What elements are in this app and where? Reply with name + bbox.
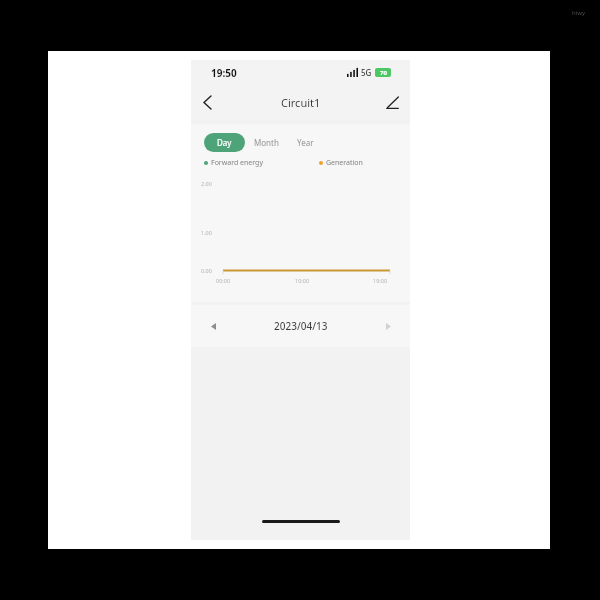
staticText: 0.00 <box>201 267 212 274</box>
staticText: 2023/04/13 <box>274 319 328 333</box>
staticText: 2.00 <box>201 180 212 187</box>
staticText: Circuit1 <box>281 95 321 110</box>
button[interactable]: Month <box>245 133 288 152</box>
button[interactable]: Next day <box>378 316 398 336</box>
staticText: Forward energy <box>211 158 263 168</box>
staticText: hiwy <box>572 9 586 17</box>
button[interactable]: Back <box>195 90 219 114</box>
staticText: 10:00 <box>295 277 310 284</box>
button[interactable]: Day <box>204 133 245 152</box>
staticText: Year <box>297 137 314 148</box>
staticText: 00:00 <box>216 277 231 284</box>
staticText: 19:50 <box>211 66 237 80</box>
staticText: Month <box>254 137 279 148</box>
button[interactable]: Year <box>288 133 323 152</box>
staticText: 19:00 <box>373 277 388 284</box>
staticText: 5G <box>361 67 372 78</box>
button[interactable]: Previous day <box>203 316 223 336</box>
staticText: Generation <box>326 158 363 168</box>
staticText: Day <box>217 137 232 148</box>
button[interactable]: Edit <box>380 90 404 114</box>
staticText: 70 <box>380 69 387 77</box>
staticText: 1.00 <box>201 229 212 236</box>
